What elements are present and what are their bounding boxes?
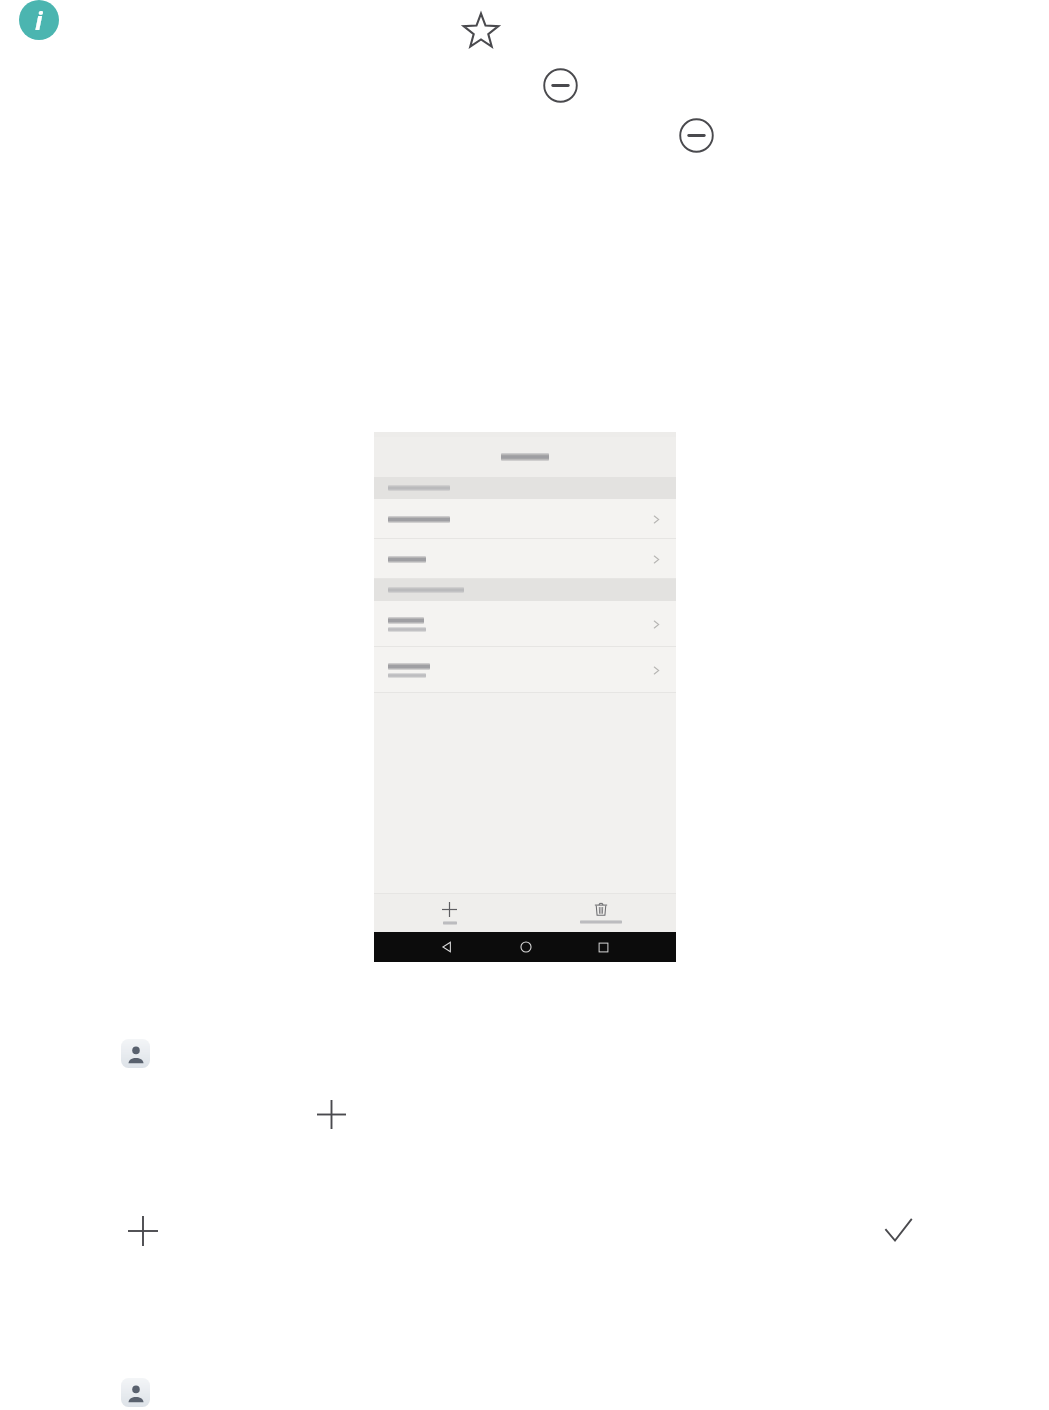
other: Back <box>441 941 453 953</box>
button[interactable]: Contact <box>121 1378 150 1407</box>
button[interactable]: Confirm <box>883 1216 913 1246</box>
button[interactable]: Contact <box>121 1039 150 1068</box>
button[interactable]: Information <box>19 0 59 40</box>
button[interactable] <box>374 647 676 693</box>
button[interactable] <box>374 601 676 647</box>
button[interactable]: Add <box>317 1100 346 1129</box>
button[interactable]: Favourites <box>462 12 500 50</box>
staticText: i <box>35 3 43 37</box>
other: Home <box>520 941 532 953</box>
button[interactable]: Remove <box>543 68 578 103</box>
button[interactable] <box>374 539 676 579</box>
button[interactable] <box>374 499 676 539</box>
button[interactable]: Add <box>128 1216 158 1246</box>
button[interactable] <box>525 894 676 932</box>
button[interactable] <box>374 894 525 932</box>
button[interactable]: Remove <box>679 118 714 153</box>
other: Recents <box>598 942 609 953</box>
